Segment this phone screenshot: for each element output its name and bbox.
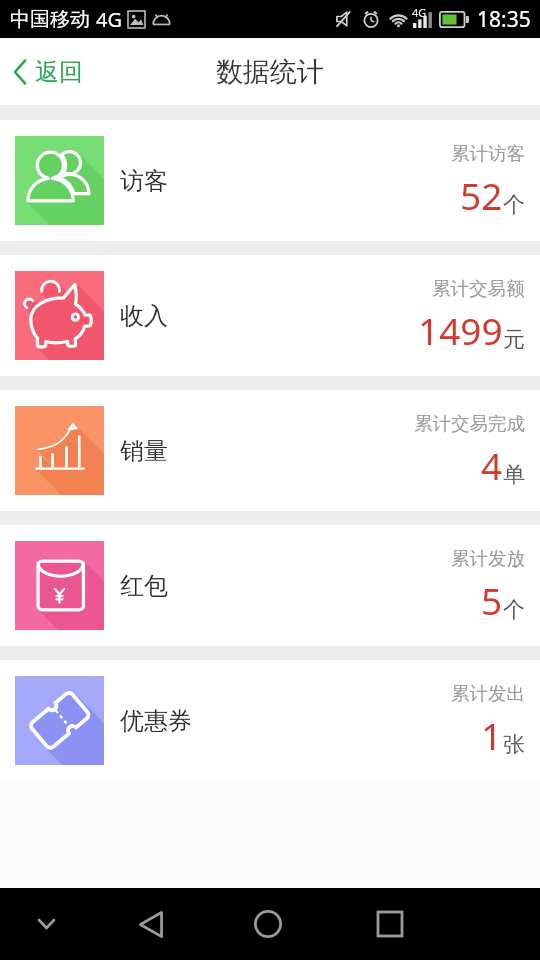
staticText: 张 [503, 731, 525, 759]
staticText: 个 [503, 191, 525, 219]
staticText: 1 [481, 710, 503, 760]
staticText: 单 [503, 461, 525, 489]
staticText: 返回 [35, 57, 83, 87]
button[interactable]: 收入 [0, 255, 540, 376]
staticText: 红包 [120, 571, 168, 601]
staticText: 累计发出 [451, 682, 525, 705]
staticText: 访客 [120, 166, 168, 196]
staticText: 个 [503, 596, 525, 624]
staticText: 中国移动 [10, 7, 90, 32]
button[interactable]: 销量 [0, 390, 540, 511]
button[interactable]: 红包 [0, 525, 540, 646]
staticText: 5 [481, 575, 503, 625]
staticText: 4G [412, 5, 427, 20]
staticText: 18:35 [477, 5, 531, 34]
staticText: 4 [481, 440, 503, 490]
staticText: 元 [503, 326, 525, 354]
staticText: 52 [460, 170, 503, 220]
button[interactable]: 返回 [0, 38, 97, 105]
button[interactable]: Home [240, 896, 296, 952]
button[interactable]: Back [123, 896, 179, 952]
staticText: 累计交易额 [432, 277, 525, 300]
button[interactable]: 访客 [0, 120, 540, 241]
staticText: 优惠券 [120, 706, 192, 736]
button[interactable]: Hide keyboard [18, 896, 74, 952]
staticText: 收入 [120, 301, 168, 331]
staticText: 累计交易完成 [414, 412, 525, 435]
staticText: 累计发放 [451, 547, 525, 570]
staticText: 累计访客 [451, 142, 525, 165]
staticText: 1499 [418, 305, 503, 355]
staticText: 销量 [120, 436, 168, 466]
staticText: 数据统计 [216, 55, 324, 89]
button[interactable]: 优惠券 [0, 660, 540, 781]
button[interactable]: Recents [362, 896, 418, 952]
staticText: 4G [96, 6, 122, 33]
